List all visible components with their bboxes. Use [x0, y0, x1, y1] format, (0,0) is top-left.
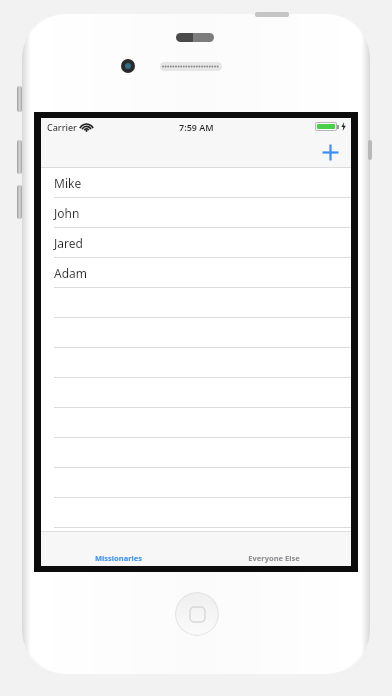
button[interactable]: Everyone Else: [196, 531, 351, 566]
staticText: John: [54, 205, 80, 221]
staticText: Missionaries: [95, 553, 142, 563]
staticText: Carrier: [47, 121, 77, 133]
staticText: Adam: [54, 265, 88, 281]
staticText: Jared: [54, 235, 83, 251]
button[interactable]: John: [41, 198, 351, 228]
button[interactable]: Adam: [41, 258, 351, 288]
button[interactable]: Add: [315, 137, 345, 167]
button[interactable]: Mike: [41, 168, 351, 198]
button[interactable]: Missionaries: [41, 531, 196, 566]
staticText: 7:59 AM: [179, 121, 214, 133]
staticText: Mike: [54, 175, 82, 191]
button[interactable]: Jared: [41, 228, 351, 258]
button[interactable]: Home: [175, 592, 219, 636]
staticText: Everyone Else: [248, 553, 300, 563]
